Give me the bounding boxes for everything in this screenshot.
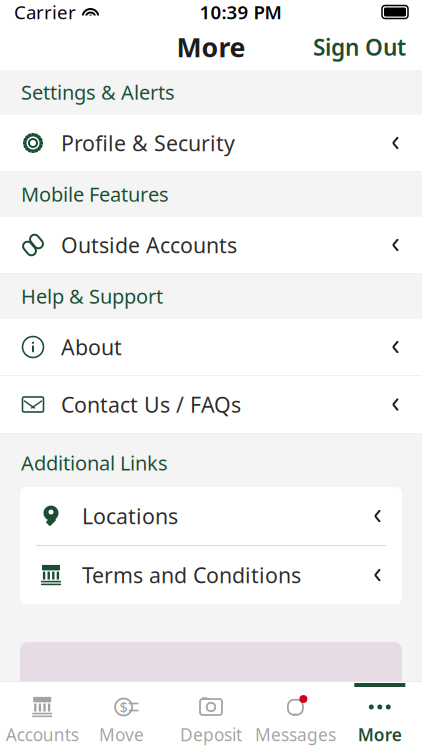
staticText: Deposit <box>180 723 242 746</box>
staticText: Settings & Alerts <box>21 79 175 105</box>
staticText: Messages <box>255 723 336 746</box>
staticText: Carrier <box>14 0 76 24</box>
staticText: Help & Support <box>21 283 163 309</box>
button[interactable]: $ <box>84 683 169 749</box>
button[interactable]: About <box>0 318 422 375</box>
staticText: Move Money <box>99 723 154 750</box>
button[interactable]: More <box>338 683 422 749</box>
staticText: Additional Links <box>21 449 168 476</box>
staticText: Mobile Features <box>21 181 169 207</box>
staticText: Accounts <box>6 723 79 746</box>
button[interactable]: Locations <box>20 487 402 545</box>
button[interactable]: Accounts <box>0 683 84 749</box>
staticText: $ <box>120 697 128 717</box>
staticText: Locations <box>82 502 178 530</box>
staticText: Profile & Security <box>61 129 235 157</box>
button[interactable]: Outside Accounts <box>0 216 422 273</box>
button[interactable]: Contact Us / FAQs <box>0 376 422 433</box>
staticText: Contact Us / FAQs <box>61 390 241 419</box>
staticText: More <box>176 29 245 65</box>
button[interactable]: Messages <box>253 683 338 749</box>
staticText: 10:39 PM <box>199 0 281 24</box>
staticText: Outside Accounts <box>61 231 237 259</box>
staticText: Sign Out <box>313 32 406 62</box>
staticText: About <box>61 333 122 361</box>
staticText: Terms and Conditions <box>82 561 301 589</box>
button[interactable]: Deposit <box>169 683 253 749</box>
staticText: More <box>358 723 402 746</box>
button[interactable]: Profile & Security <box>0 114 422 171</box>
button[interactable]: Terms and Conditions <box>20 546 402 604</box>
button[interactable]: Sign Out <box>297 24 422 70</box>
